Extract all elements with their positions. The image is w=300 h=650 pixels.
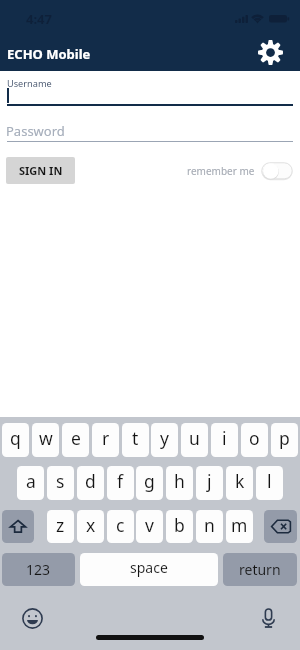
staticText: y — [160, 426, 169, 450]
button[interactable]: x — [77, 510, 104, 543]
button[interactable]: s — [47, 466, 74, 500]
button[interactable]: Backspace — [264, 510, 297, 543]
staticText: x — [86, 513, 96, 537]
staticText: l — [267, 469, 272, 493]
button[interactable]: k — [226, 466, 253, 500]
staticText: Password — [6, 122, 65, 140]
staticText: h — [174, 469, 185, 493]
button[interactable]: r — [92, 423, 119, 457]
button[interactable]: d — [77, 466, 104, 500]
staticText: SIGN IN — [19, 163, 63, 178]
staticText: ECHO Mobile — [7, 45, 91, 63]
button[interactable]: y — [151, 423, 178, 457]
button[interactable]: z — [47, 510, 74, 543]
button[interactable]: l — [256, 466, 283, 500]
button[interactable]: i — [211, 423, 238, 457]
button[interactable]: space — [80, 553, 218, 586]
staticText: g — [144, 469, 155, 493]
staticText: j — [207, 469, 212, 493]
button[interactable]: 123 — [2, 553, 75, 586]
staticText: remember me — [187, 164, 255, 178]
staticText: Username — [7, 77, 52, 90]
button[interactable]: u — [181, 423, 208, 457]
staticText: w — [39, 426, 53, 450]
staticText: z — [56, 513, 65, 537]
button[interactable]: g — [136, 466, 163, 500]
staticText: c — [116, 513, 125, 537]
staticText: v — [145, 513, 154, 537]
staticText: m — [231, 513, 248, 537]
button[interactable]: e — [62, 423, 89, 457]
button[interactable]: Settings — [254, 36, 286, 68]
button[interactable]: p — [271, 423, 298, 457]
staticText: 123 — [26, 560, 51, 579]
staticText: b — [174, 513, 185, 537]
staticText: e — [71, 426, 81, 450]
button[interactable]: j — [196, 466, 223, 500]
staticText: n — [204, 513, 215, 537]
staticText: o — [249, 426, 260, 450]
button[interactable]: a — [17, 466, 44, 500]
staticText: a — [26, 469, 36, 493]
staticText: space — [130, 558, 168, 577]
staticText: u — [189, 426, 200, 450]
staticText: k — [235, 469, 245, 493]
staticText: f — [117, 469, 124, 493]
button[interactable]: v — [136, 510, 163, 543]
button[interactable]: h — [166, 466, 193, 500]
staticText: d — [85, 469, 96, 493]
button[interactable]: f — [107, 466, 134, 500]
button[interactable]: q — [2, 423, 29, 457]
staticText: return — [239, 560, 281, 579]
staticText: q — [10, 426, 21, 450]
staticText: r — [102, 426, 110, 450]
staticText: 4:47 — [26, 10, 52, 28]
staticText: t — [132, 426, 139, 450]
button[interactable]: Voice input — [256, 606, 280, 630]
button[interactable]: remember me — [187, 157, 293, 184]
staticText: i — [222, 426, 227, 450]
button[interactable]: n — [196, 510, 223, 543]
button[interactable]: o — [241, 423, 268, 457]
staticText: p — [279, 426, 290, 450]
button[interactable]: return — [223, 553, 297, 586]
button[interactable]: c — [107, 510, 134, 543]
button[interactable]: m — [226, 510, 253, 543]
button[interactable]: SIGN IN — [6, 157, 75, 184]
button[interactable]: w — [32, 423, 59, 457]
button[interactable]: Emoji keyboard — [20, 606, 44, 630]
button[interactable]: b — [166, 510, 193, 543]
staticText: s — [56, 469, 65, 493]
button[interactable]: t — [122, 423, 149, 457]
button[interactable]: Shift — [2, 510, 34, 543]
